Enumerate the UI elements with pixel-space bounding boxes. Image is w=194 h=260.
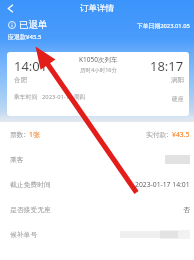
staticText: 2023-01-17 14:01: [135, 180, 190, 189]
staticText: 订单详情: [80, 3, 114, 14]
staticText: 2023-01-19 周四: [42, 93, 86, 101]
button[interactable]: 截止免费时间: [10, 172, 190, 197]
staticText: 1张: [29, 130, 40, 139]
staticText: 否: [183, 205, 190, 214]
staticText: ¥43.5: [172, 130, 190, 139]
staticText: 涡阳: [171, 76, 184, 84]
staticText: 截止免费时间: [10, 180, 51, 189]
staticText: 历时4小时16分: [80, 66, 117, 74]
button[interactable]: Back: [0, 0, 17, 17]
staticText: 票数:: [10, 130, 26, 139]
staticText: 乘车时间: [14, 93, 38, 100]
staticText: 下单日期2023.01.05: [137, 22, 190, 30]
staticText: 是否接受无座: [10, 205, 51, 214]
staticText: 合肥: [14, 76, 27, 84]
staticText: K1050次列车: [79, 55, 118, 64]
button[interactable]: 票数:: [10, 122, 190, 147]
staticText: 实付款:: [146, 130, 169, 139]
staticText: 已退单: [19, 19, 48, 31]
staticText: 硬座: [172, 95, 184, 102]
staticText: 18:17: [150, 57, 184, 75]
staticText: 14:01: [14, 57, 48, 75]
button[interactable]: 乘客: [10, 147, 190, 172]
button[interactable]: 候补单号: [10, 222, 190, 247]
staticText: 乘客: [10, 155, 24, 164]
button[interactable]: 是否接受无座: [10, 197, 190, 222]
staticText: 应退款¥43.5: [8, 33, 42, 41]
staticText: 候补单号: [10, 230, 38, 239]
